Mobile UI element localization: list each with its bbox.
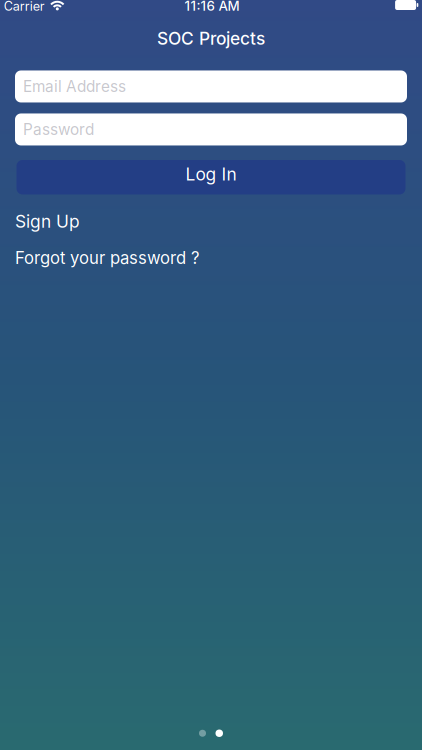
staticText: Sign Up <box>15 211 80 232</box>
staticText: Forgot your password ? <box>15 248 200 268</box>
staticText: Email Address <box>23 77 126 96</box>
staticText: Password <box>23 120 94 139</box>
button[interactable]: Sign Up <box>15 211 80 232</box>
button[interactable]: Forgot your password ? <box>15 248 200 268</box>
button[interactable]: Email Address <box>15 70 407 102</box>
staticText: Log In <box>185 164 236 185</box>
staticText: 11:16 AM <box>184 0 239 14</box>
button[interactable] <box>199 729 223 737</box>
button[interactable]: Password <box>15 113 407 145</box>
button[interactable]: Log In <box>16 160 405 194</box>
staticText: SOC Projects <box>157 28 265 49</box>
staticText: Carrier <box>4 0 45 14</box>
